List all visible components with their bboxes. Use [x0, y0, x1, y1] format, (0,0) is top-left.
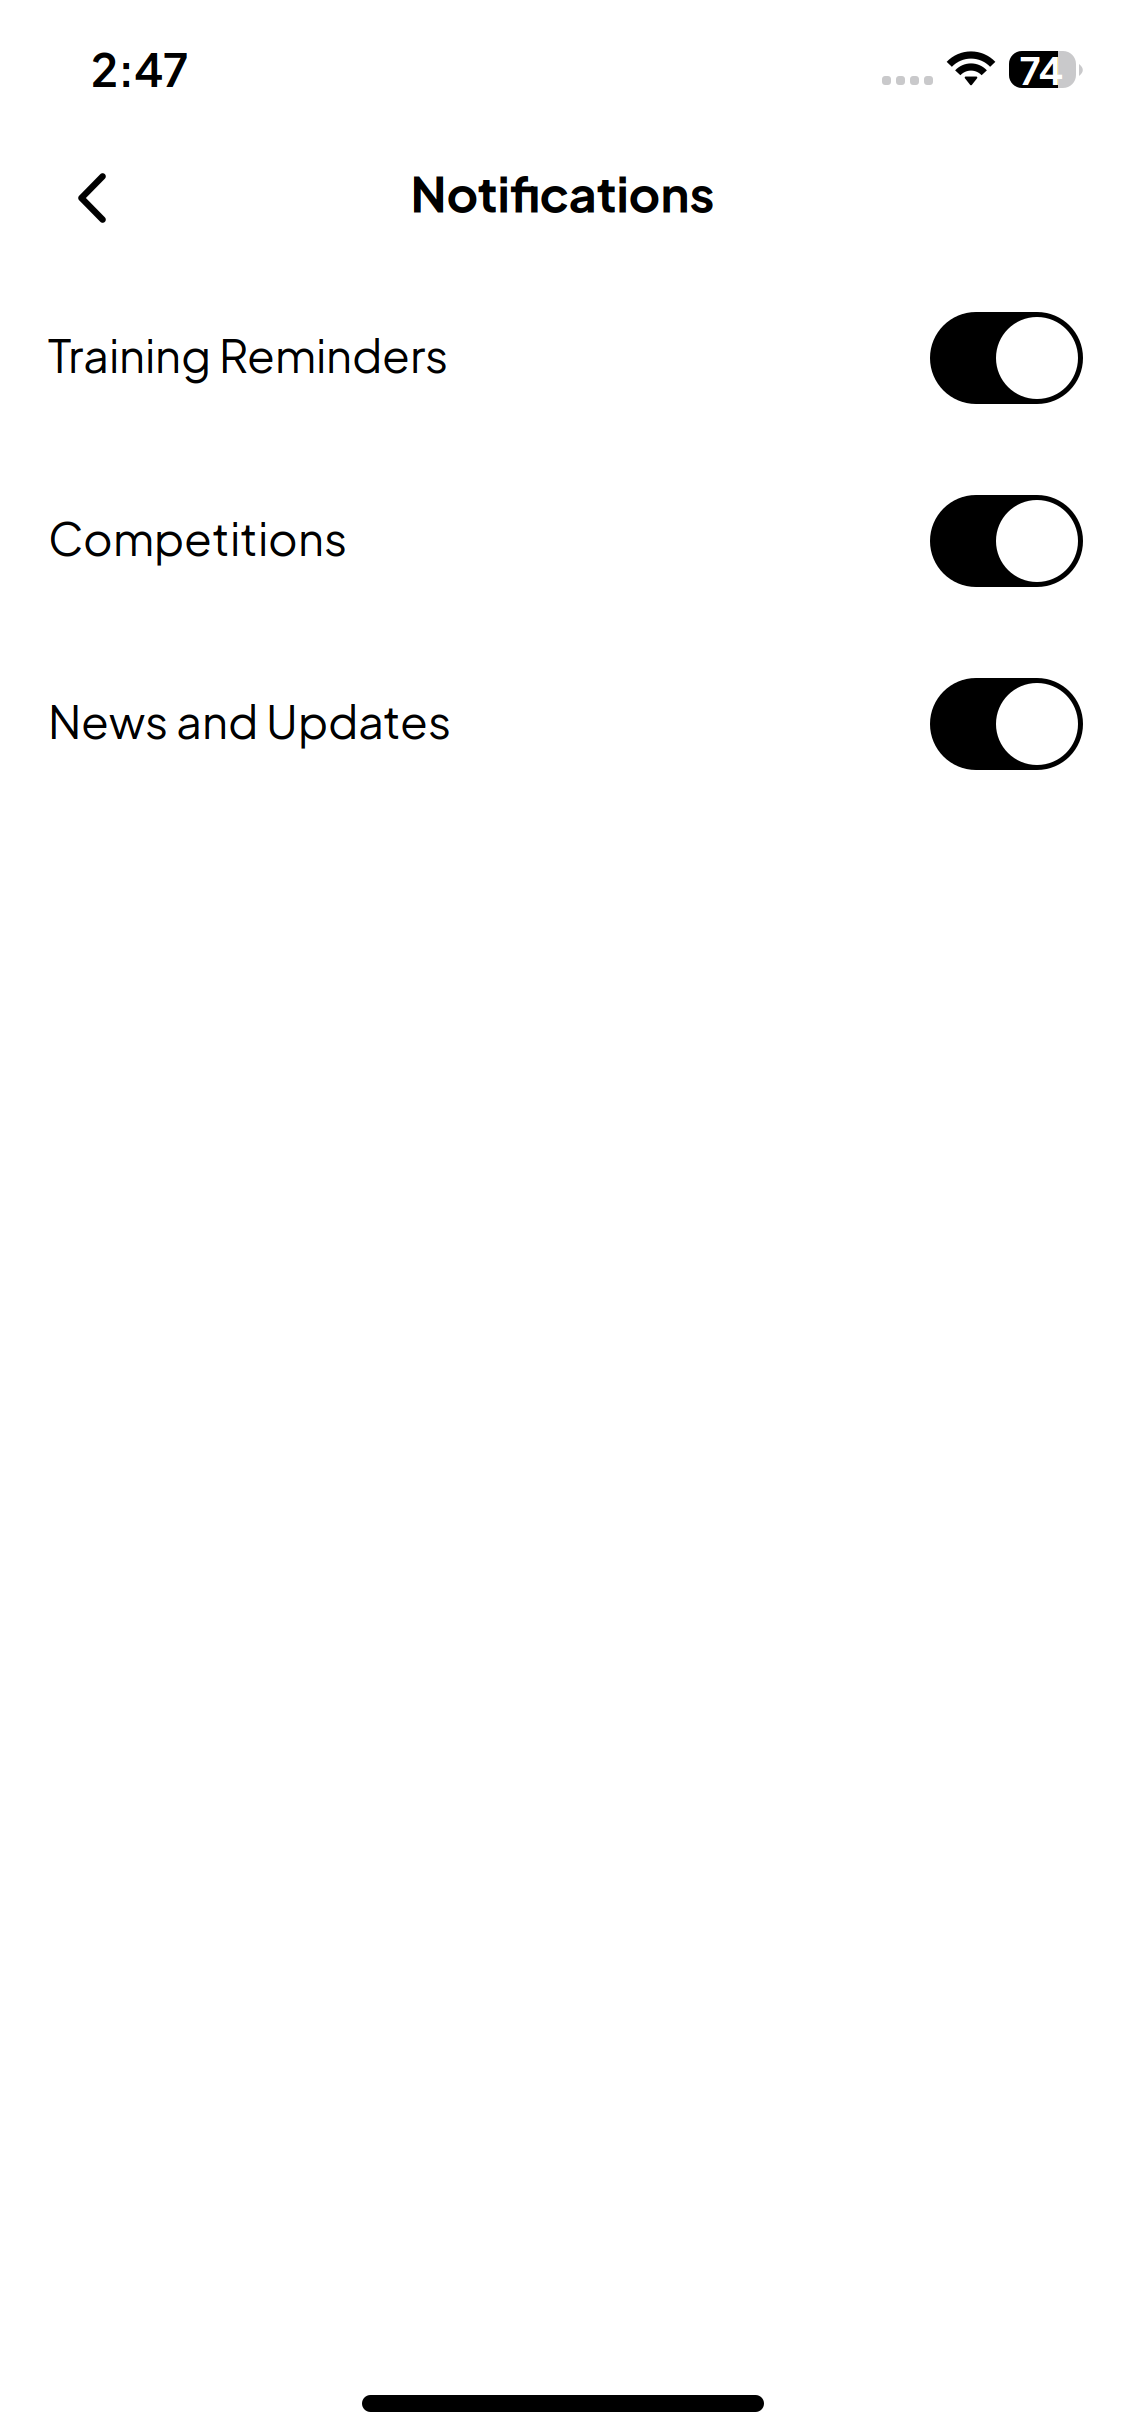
button[interactable]: Competitions	[0, 495, 1125, 587]
staticText: Notifications	[410, 162, 714, 223]
staticText: 74	[1019, 45, 1063, 93]
staticText: News and Updates	[48, 692, 451, 749]
staticText: Competitions	[48, 509, 347, 566]
button[interactable]: Training Reminders	[0, 312, 1125, 404]
button[interactable]: Back	[37, 143, 147, 253]
staticText: 2:47	[91, 40, 188, 97]
button[interactable]: News and Updates	[0, 678, 1125, 770]
staticText: Training Reminders	[48, 326, 448, 383]
